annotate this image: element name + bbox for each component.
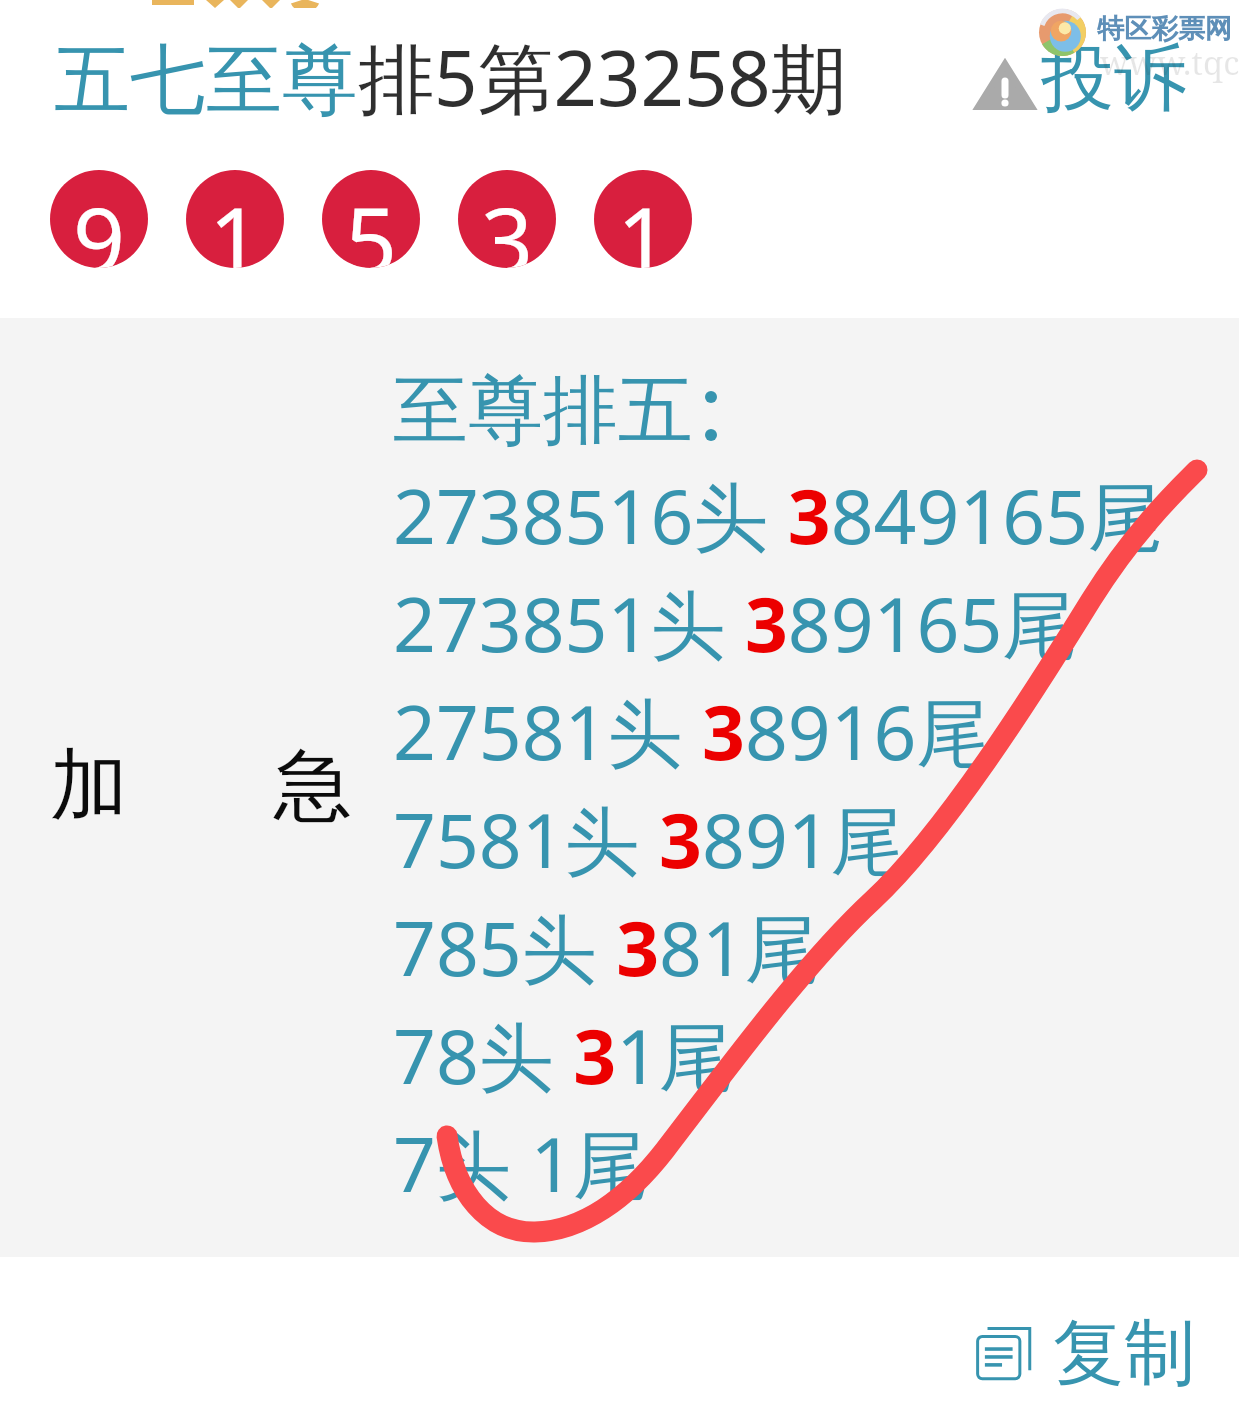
staticText: 9 xyxy=(73,177,126,268)
button[interactable]: 9 xyxy=(50,170,148,268)
staticText: 特区彩票网 xyxy=(1097,12,1232,46)
staticText: 3 xyxy=(481,177,534,268)
button[interactable]: 1 xyxy=(186,170,284,268)
staticText: 1 xyxy=(209,177,262,268)
staticText: 复制 xyxy=(1053,1309,1195,1398)
staticText: 7头 1尾 xyxy=(393,1112,649,1214)
staticText: 2738516头 3849165尾 xyxy=(393,464,1164,566)
staticText: 急 xyxy=(274,737,352,835)
button[interactable]: 1 xyxy=(594,170,692,268)
button[interactable]: 5 xyxy=(322,170,420,268)
other: 投诉 xyxy=(970,35,1040,123)
staticText: 273851头 389165尾 xyxy=(393,572,1078,674)
other: 复制 xyxy=(973,1307,1039,1399)
staticText: 785头 381尾 xyxy=(393,896,820,998)
button[interactable]: 3 xyxy=(458,170,556,268)
button[interactable]: 复制 xyxy=(973,1307,1195,1399)
staticText: 1 xyxy=(617,177,670,268)
staticText: 投诉 xyxy=(1041,33,1187,125)
staticText: 至尊排五 xyxy=(393,364,693,458)
staticText: 27581头 38916尾 xyxy=(393,680,992,782)
button[interactable]: 投诉 xyxy=(965,33,1187,125)
staticText: www.tqcp.net xyxy=(1100,40,1239,85)
staticText: 7581头 3891尾 xyxy=(393,788,906,890)
staticText: 78头 31尾 xyxy=(393,1004,735,1106)
staticText: 加 xyxy=(50,737,128,835)
staticText: 5 xyxy=(345,177,398,268)
staticText: 五七至尊排5第23258期 xyxy=(54,25,847,129)
